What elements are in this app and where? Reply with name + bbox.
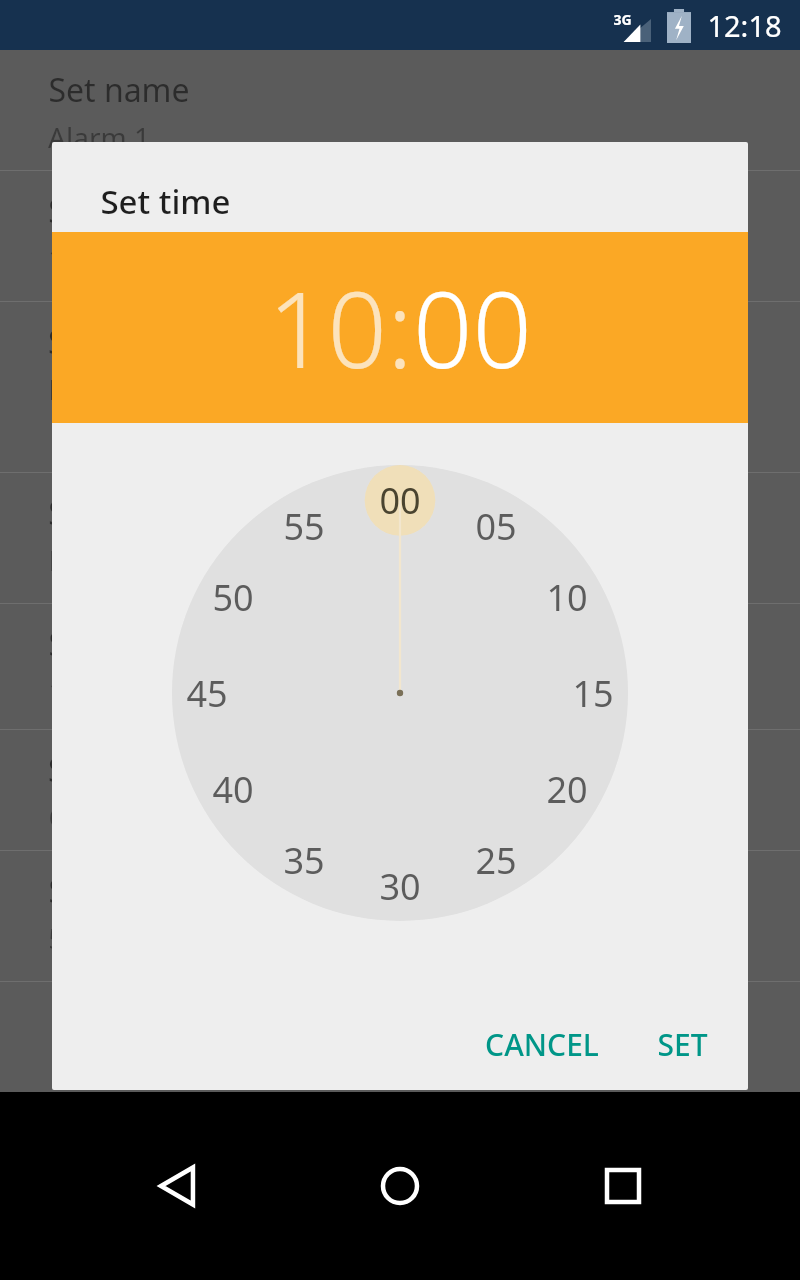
- staticText: 10:00: [48, 239, 120, 277]
- button[interactable]: 00: [172, 465, 628, 921]
- staticText: 3G: [613, 10, 632, 29]
- button[interactable]: Set sound: [0, 473, 800, 603]
- staticText: 50: [212, 573, 254, 622]
- button[interactable]: 10: [268, 257, 387, 399]
- button[interactable]: SET: [639, 1014, 726, 1075]
- button[interactable]: Set days: [0, 302, 800, 472]
- staticText: 10: [546, 573, 588, 622]
- staticText: 45: [186, 669, 228, 718]
- staticText: Alarm 1: [48, 118, 150, 156]
- staticText: :: [387, 257, 413, 399]
- staticText: 12:18: [707, 6, 782, 45]
- staticText: 20: [546, 765, 588, 814]
- staticText: Set time: [100, 179, 231, 224]
- staticText: Set volume: [48, 869, 216, 913]
- staticText: Default: [48, 541, 145, 579]
- staticText: 40: [212, 765, 254, 814]
- staticText: Set time: [48, 189, 172, 233]
- staticText: Set days: [48, 320, 173, 364]
- staticText: 05: [475, 502, 517, 551]
- staticText: Set snooze: [48, 622, 211, 666]
- staticText: 50%: [48, 919, 104, 957]
- staticText: Set sound: [48, 491, 198, 535]
- button[interactable]: CANCEL: [467, 1014, 617, 1075]
- button[interactable]: Set time: [0, 171, 800, 301]
- button[interactable]: Back: [131, 1140, 223, 1232]
- staticText: 15: [572, 669, 614, 718]
- staticText: 35: [283, 836, 325, 885]
- button[interactable]: Set snooze: [0, 604, 800, 729]
- button[interactable]: Set name: [0, 50, 800, 170]
- staticText: 55: [283, 502, 325, 551]
- button[interactable]: Home: [354, 1140, 446, 1232]
- button[interactable]: Recent apps: [577, 1140, 669, 1232]
- staticText: Set name: [48, 68, 190, 112]
- staticText: Set vibrate: [48, 748, 208, 792]
- button[interactable]: 00: [413, 257, 532, 399]
- button[interactable]: Set vibrate: [0, 730, 800, 850]
- staticText: 30: [379, 862, 421, 911]
- staticText: 00: [379, 476, 421, 525]
- staticText: SET: [657, 1024, 708, 1065]
- button[interactable]: Set volume: [0, 851, 800, 981]
- staticText: 25: [475, 836, 517, 885]
- staticText: On: [48, 798, 88, 836]
- staticText: 10 min: [48, 672, 139, 710]
- staticText: CANCEL: [485, 1024, 599, 1065]
- staticText: Mon, Tue: [48, 370, 170, 408]
